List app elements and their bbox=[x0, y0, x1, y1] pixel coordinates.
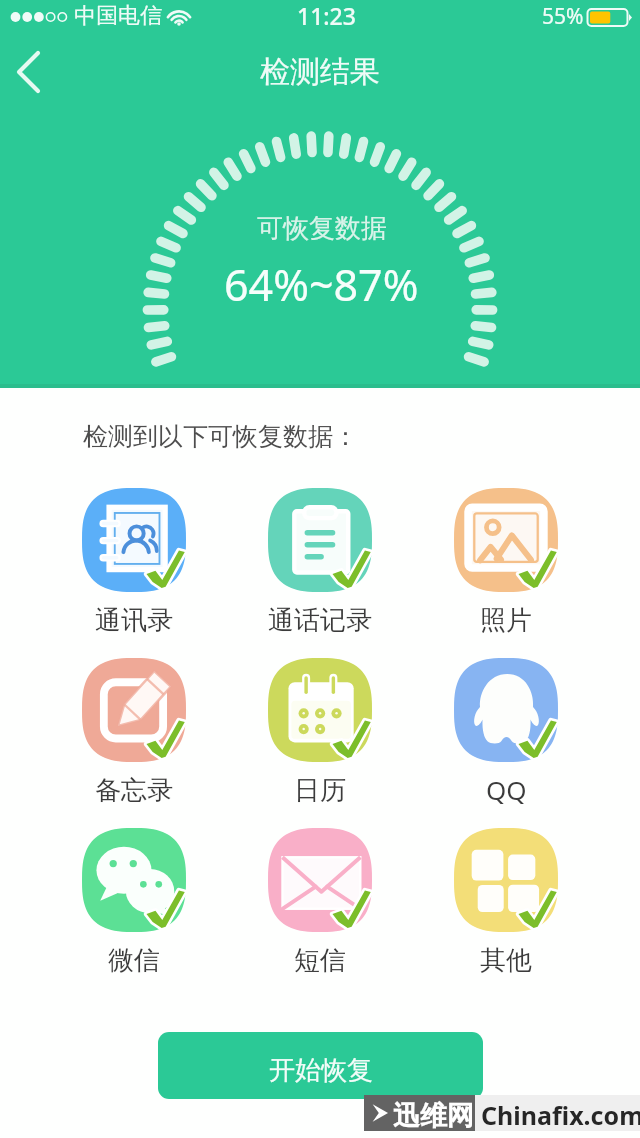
staticText: 可恢复数据 bbox=[257, 212, 387, 245]
button[interactable]: 通讯录 bbox=[72, 486, 196, 632]
staticText: 检测到以下可恢复数据： bbox=[83, 421, 358, 452]
staticText: 11:23 bbox=[297, 0, 356, 31]
button[interactable]: Back bbox=[0, 42, 58, 102]
button[interactable]: QQ bbox=[444, 656, 568, 802]
button[interactable]: 照片 bbox=[444, 486, 568, 632]
staticText: 64%~87% bbox=[224, 255, 419, 314]
staticText: 备忘录 bbox=[95, 774, 173, 807]
staticText: 55% bbox=[542, 2, 584, 31]
button[interactable]: 备忘录 bbox=[72, 656, 196, 802]
staticText: 通讯录 bbox=[95, 604, 173, 637]
button[interactable]: 日历 bbox=[258, 656, 382, 802]
staticText: 短信 bbox=[294, 944, 346, 977]
staticText: 微信 bbox=[108, 944, 160, 977]
button[interactable]: 通话记录 bbox=[258, 486, 382, 632]
staticText: 开始恢复 bbox=[269, 1054, 373, 1087]
staticText: 迅维网 bbox=[393, 1099, 474, 1133]
button[interactable]: 微信 bbox=[72, 826, 196, 972]
staticText: QQ bbox=[486, 772, 527, 807]
staticText: 照片 bbox=[480, 604, 532, 637]
button[interactable]: 其他 bbox=[444, 826, 568, 972]
button[interactable]: 开始恢复 bbox=[158, 1032, 483, 1099]
staticText: 检测结果 bbox=[260, 53, 380, 91]
staticText: Chinafix.com bbox=[481, 1098, 640, 1132]
staticText: 中国电信 bbox=[74, 2, 162, 30]
staticText: 日历 bbox=[294, 774, 346, 807]
staticText: 通话记录 bbox=[268, 604, 372, 637]
staticText: 其他 bbox=[480, 944, 532, 977]
button[interactable]: 短信 bbox=[258, 826, 382, 972]
